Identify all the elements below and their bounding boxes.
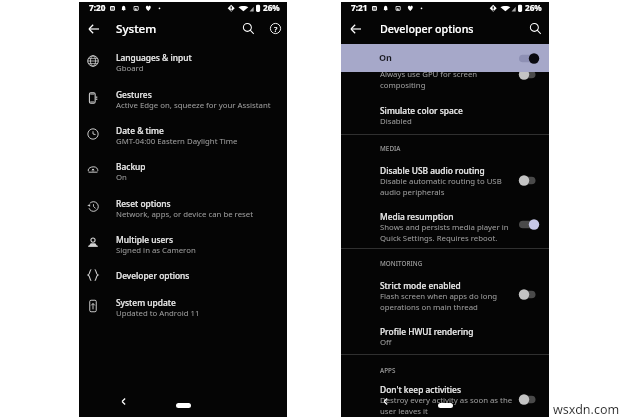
button[interactable]: Always use GPU for screen: [380, 69, 478, 91]
button[interactable]: Switch off: [519, 69, 540, 80]
button[interactable]: Backup: [79, 153, 287, 189]
staticText: Signed in as Cameron: [116, 245, 196, 256]
staticText: Multiple users: [116, 234, 173, 245]
button[interactable]: Search: [527, 20, 544, 37]
staticText: Active Edge on, squeeze for your Assista…: [116, 100, 271, 111]
button[interactable]: Disable USB audio routing: [341, 159, 549, 195]
button[interactable]: Back: [347, 20, 365, 38]
staticText: System update: [116, 297, 176, 308]
staticText: Network, apps, or device can be reset: [116, 209, 254, 220]
staticText: Developer options: [380, 22, 474, 37]
button[interactable]: Strict mode enabled: [341, 274, 549, 310]
staticText: 26%: [525, 2, 542, 13]
button[interactable]: Switch off: [519, 394, 540, 405]
staticText: 7:21: [351, 2, 368, 13]
staticText: Off: [380, 337, 392, 348]
staticText: Reset options: [116, 198, 171, 209]
staticText: operations on main thread: [380, 302, 478, 313]
button[interactable]: System update: [79, 289, 287, 325]
button[interactable]: Simulate color space: [341, 99, 549, 127]
staticText: MEDIA: [380, 144, 401, 153]
staticText: compositing: [380, 80, 426, 91]
staticText: On: [116, 172, 127, 183]
staticText: MONITORING: [380, 259, 423, 268]
staticText: ?: [274, 24, 278, 34]
button[interactable]: Don't keep activities: [341, 378, 549, 414]
staticText: Media resumption: [380, 211, 454, 222]
staticText: 7:20: [89, 2, 106, 13]
staticText: System: [116, 21, 157, 37]
staticText: Simulate color space: [380, 105, 463, 116]
staticText: Quick Settings. Requires reboot.: [380, 233, 498, 244]
button[interactable]: Help: [267, 20, 284, 37]
staticText: Shows and persists media player in: [380, 222, 509, 233]
button[interactable]: Switch off: [519, 175, 540, 186]
button[interactable]: Switch on: [519, 219, 540, 230]
button[interactable]: Multiple users: [79, 226, 287, 262]
button[interactable]: Back: [119, 397, 128, 406]
button[interactable]: Developer options: [79, 262, 287, 289]
staticText: Developer options: [116, 270, 190, 281]
staticText: GMT-04:00 Eastern Daylight Time: [116, 136, 238, 147]
staticText: Always use GPU for screen: [380, 69, 478, 80]
staticText: On: [379, 51, 392, 63]
button[interactable]: Home: [438, 403, 453, 408]
button[interactable]: Media resumption: [341, 205, 549, 241]
button[interactable]: Back: [381, 397, 390, 406]
button[interactable]: On: [341, 44, 549, 72]
staticText: Backup: [116, 161, 146, 172]
staticText: Disabled: [380, 116, 412, 127]
staticText: audio peripherals: [380, 187, 445, 198]
staticText: Don't keep activities: [380, 384, 461, 395]
button[interactable]: Switch off: [519, 289, 540, 300]
button[interactable]: Back: [85, 20, 103, 38]
staticText: Flash screen when apps do long: [380, 291, 497, 302]
staticText: Gestures: [116, 89, 152, 100]
staticText: user leaves it: [380, 406, 428, 417]
staticText: 26%: [263, 2, 280, 13]
button[interactable]: Languages & input: [79, 44, 287, 80]
staticText: APPS: [380, 366, 396, 375]
staticText: Destroy every activity as soon as the: [380, 395, 513, 406]
staticText: Profile HWUI rendering: [380, 326, 474, 337]
button[interactable]: Date & time: [79, 117, 287, 153]
button[interactable]: Switch on: [519, 53, 540, 64]
staticText: Disable automatic routing to USB: [380, 176, 502, 187]
staticText: Strict mode enabled: [380, 280, 461, 291]
staticText: Updated to Android 11: [116, 308, 200, 319]
button[interactable]: Search: [240, 20, 257, 37]
button[interactable]: Profile HWUI rendering: [341, 320, 549, 348]
staticText: Languages & input: [116, 52, 192, 63]
staticText: wsxdn.com: [553, 401, 620, 418]
button[interactable]: Gestures: [79, 81, 287, 117]
button[interactable]: Home: [176, 403, 191, 408]
staticText: Date & time: [116, 125, 164, 136]
button[interactable]: Reset options: [79, 190, 287, 226]
staticText: Gboard: [116, 63, 144, 74]
staticText: Disable USB audio routing: [380, 165, 485, 176]
